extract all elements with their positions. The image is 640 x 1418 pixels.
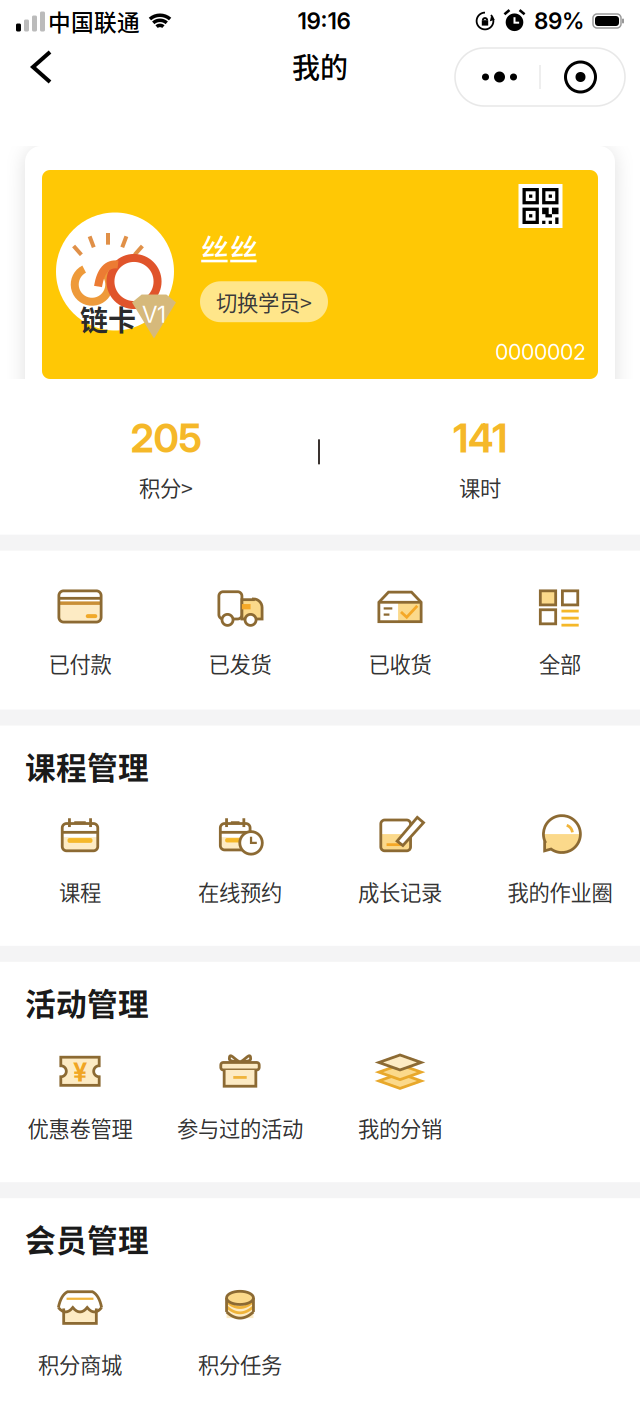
button[interactable]: Back (8, 46, 68, 108)
staticText: 优惠卷管理 (27, 1112, 132, 1143)
staticText: 积分任务 (198, 1349, 282, 1379)
button[interactable]: 205 (0, 415, 320, 503)
staticText: 已收货 (368, 648, 431, 679)
staticText: ¥ (73, 1057, 87, 1088)
button[interactable]: 已付款 (0, 581, 160, 683)
staticText: 19:16 (297, 7, 350, 35)
button[interactable]: Close (540, 54, 620, 100)
button[interactable]: 课程 (0, 809, 160, 911)
staticText: 活动管理 (25, 980, 149, 1024)
button[interactable]: ¥ (0, 1045, 160, 1147)
button[interactable]: 我的分销 (320, 1045, 480, 1147)
staticText: 课程 (59, 876, 101, 907)
button[interactable]: 切换学员> (200, 281, 328, 322)
staticText: 链卡 (80, 298, 136, 339)
button[interactable]: 成长记录 (320, 809, 480, 911)
staticText: 积分> (139, 472, 193, 503)
staticText: 会员管理 (25, 1216, 149, 1261)
staticText: 积分商城 (38, 1349, 122, 1379)
staticText: 141 (453, 415, 507, 462)
button[interactable]: 参与过的活动 (160, 1045, 320, 1147)
staticText: 参与过的活动 (177, 1112, 303, 1143)
staticText: 我的分销 (358, 1112, 442, 1143)
button[interactable]: 我的作业圈 (480, 809, 640, 911)
staticText: 89% (534, 7, 584, 35)
button[interactable]: 141 (320, 415, 640, 503)
staticText: 205 (130, 415, 201, 462)
button[interactable]: 已收货 (320, 581, 480, 683)
button[interactable]: 在线预约 (160, 809, 320, 911)
staticText: 成长记录 (358, 876, 442, 907)
staticText: 已发货 (208, 648, 271, 679)
button[interactable]: 全部 (480, 581, 640, 683)
staticText: 丝丝 (200, 227, 258, 269)
staticText: 课时 (459, 472, 501, 503)
staticText: 已付款 (48, 648, 111, 679)
button[interactable]: 积分任务 (160, 1282, 320, 1383)
staticText: V1 (142, 301, 166, 328)
button[interactable]: 积分商城 (0, 1282, 160, 1383)
staticText: 课程管理 (25, 744, 149, 788)
staticText: 我的作业圈 (507, 876, 612, 907)
button[interactable]: More (459, 54, 539, 100)
button[interactable]: 已发货 (160, 581, 320, 683)
staticText: 我的 (292, 46, 348, 86)
staticText: 0000002 (495, 339, 586, 365)
staticText: 全部 (539, 648, 581, 679)
staticText: 中国联通 (48, 5, 140, 37)
button[interactable]: QR code (518, 184, 562, 228)
staticText: 切换学员> (216, 286, 312, 317)
staticText: 在线预约 (198, 876, 282, 907)
